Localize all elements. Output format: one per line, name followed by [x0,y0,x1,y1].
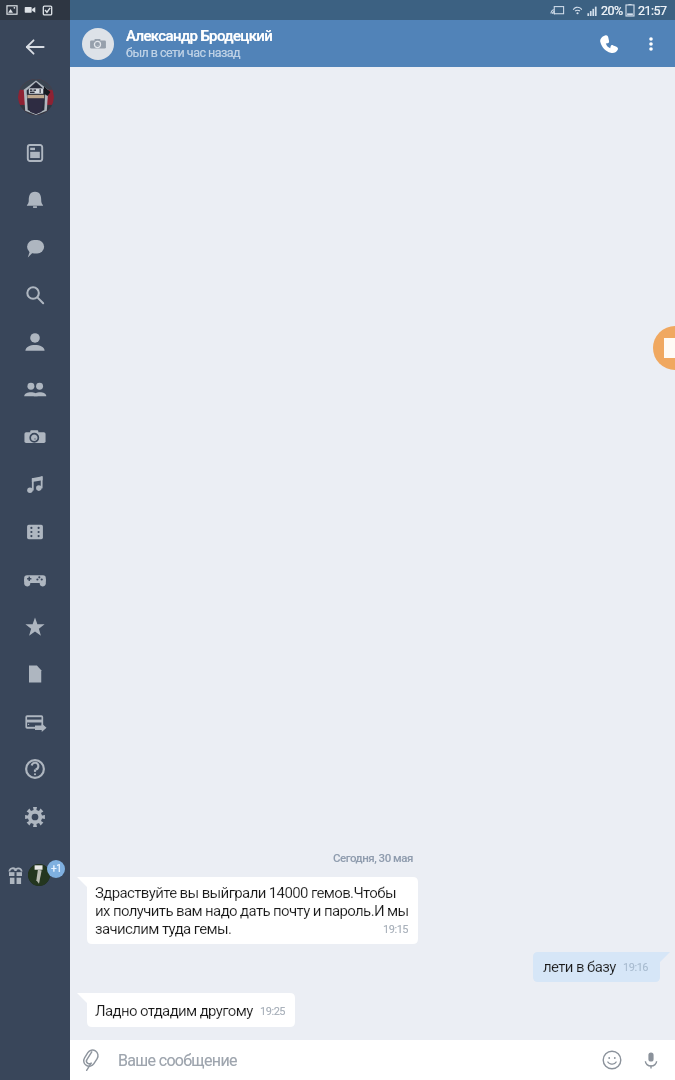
staticText: был в сети час назад [126,45,241,60]
staticText: 19:15 [383,923,409,936]
button[interactable]: Gifts [9,868,22,884]
button[interactable]: Settings [23,805,47,829]
button[interactable]: Emoji [594,1042,630,1078]
button[interactable]: Search [23,283,47,307]
button[interactable]: лети в базу [533,952,670,982]
button[interactable]: Music [23,473,47,497]
staticText: +1 [51,863,62,875]
staticText: зачислим туда гемы. [95,920,232,938]
button[interactable]: Profile [18,79,54,115]
button[interactable]: Здраствуйте вы выйграли 14000 гемов.Чтоб… [77,877,418,944]
staticText: Сегодня, 30 мая [333,851,413,864]
staticText: 20% [601,3,623,18]
button[interactable]: News [23,141,47,165]
button[interactable]: Attach [70,1040,110,1080]
staticText: 21:57 [638,3,667,18]
button[interactable]: Payments [23,710,47,734]
button[interactable]: Ладно отдадим другому [77,993,295,1027]
staticText: 19:25 [260,1005,286,1018]
button[interactable]: Messages [23,236,47,260]
button[interactable]: Games [23,568,47,592]
button[interactable]: Help [23,757,47,781]
button[interactable]: Bookmarks [23,615,47,639]
button[interactable]: Friends [23,378,47,402]
button[interactable]: Call [587,22,631,66]
button[interactable]: Back [23,35,47,59]
button[interactable]: Communities [27,859,69,889]
button[interactable]: Notifications [23,188,47,212]
staticText: Ваше сообщение [118,1051,237,1070]
staticText: Александр Бродецкий [126,27,273,45]
button[interactable]: Voice message [633,1042,669,1078]
button[interactable]: Photos [23,425,47,449]
button[interactable]: Profile [23,331,47,355]
staticText: Здраствуйте вы выйграли 14000 гемов.Чтоб… [95,884,396,902]
staticText: лети в базу [543,958,616,976]
staticText: Ладно отдадим другому [95,1002,253,1020]
staticText: их получить вам надо дать почту и пароль… [95,902,409,920]
button[interactable]: Apps [23,520,47,544]
button[interactable]: More options [631,24,671,64]
staticText: 19:16 [623,961,649,974]
button[interactable]: Documents [23,662,47,686]
